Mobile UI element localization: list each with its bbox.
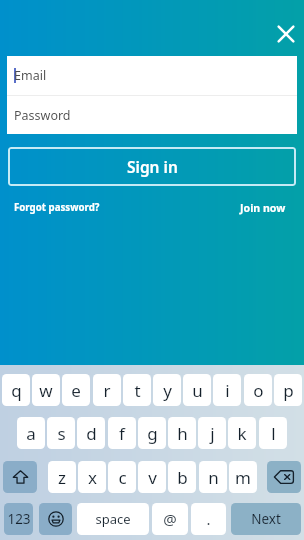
button[interactable]: f — [108, 417, 136, 449]
button[interactable]: q — [2, 374, 30, 406]
button[interactable]: w — [32, 374, 60, 406]
button[interactable]: Sign in — [8, 147, 296, 186]
button[interactable]: c — [108, 461, 136, 493]
staticText: n — [208, 466, 219, 489]
staticText: Forgot password? — [14, 201, 100, 214]
staticText: q — [11, 379, 22, 402]
button[interactable]: Forgot password? — [14, 201, 100, 214]
staticText: y — [163, 379, 172, 402]
staticText: v — [148, 466, 157, 489]
staticText: Join now — [240, 201, 286, 215]
button[interactable]: j — [198, 417, 226, 449]
staticText: o — [253, 379, 264, 402]
button[interactable]: m — [229, 461, 257, 493]
button[interactable]: i — [213, 374, 241, 406]
button[interactable]: Backspace — [267, 461, 301, 493]
staticText: space — [95, 510, 131, 528]
button[interactable]: z — [48, 461, 76, 493]
staticText: Email — [14, 67, 47, 84]
button[interactable]: l — [259, 417, 287, 449]
button[interactable]: n — [199, 461, 227, 493]
staticText: j — [210, 422, 215, 445]
staticText: t — [134, 379, 141, 402]
staticText: g — [147, 422, 158, 445]
button[interactable]: . — [191, 503, 226, 535]
staticText: d — [86, 422, 97, 445]
button[interactable]: Close — [270, 18, 302, 50]
button[interactable]: d — [77, 417, 105, 449]
staticText: h — [177, 422, 188, 445]
staticText: 123 — [7, 510, 31, 528]
button[interactable]: Next — [231, 503, 301, 535]
button[interactable]: 123 — [4, 503, 33, 535]
staticText: x — [88, 466, 97, 489]
button[interactable]: e — [62, 374, 90, 406]
button[interactable]: space — [77, 503, 149, 535]
staticText: p — [283, 379, 294, 402]
staticText: i — [225, 379, 230, 402]
button[interactable]: x — [78, 461, 106, 493]
staticText: z — [58, 466, 66, 489]
staticText: . — [206, 509, 211, 529]
staticText: f — [119, 422, 125, 445]
button[interactable]: k — [228, 417, 256, 449]
button[interactable]: p — [274, 374, 302, 406]
button[interactable]: s — [47, 417, 75, 449]
button[interactable]: o — [244, 374, 272, 406]
button[interactable]: @ — [152, 503, 188, 535]
staticText: @ — [163, 509, 177, 529]
button[interactable]: u — [183, 374, 211, 406]
button[interactable]: Email — [7, 56, 297, 95]
button[interactable]: Emoji — [39, 503, 72, 535]
staticText: m — [235, 466, 251, 489]
button[interactable]: v — [138, 461, 166, 493]
button[interactable]: h — [168, 417, 196, 449]
button[interactable]: Shift — [3, 461, 37, 493]
button[interactable]: a — [17, 417, 45, 449]
staticText: r — [103, 379, 111, 402]
button[interactable]: Join now — [240, 201, 286, 215]
button[interactable]: Password — [7, 96, 297, 134]
staticText: u — [192, 379, 203, 402]
staticText: a — [26, 422, 36, 445]
staticText: l — [271, 422, 276, 445]
staticText: w — [39, 379, 53, 402]
button[interactable]: t — [123, 374, 151, 406]
staticText: Sign in — [127, 156, 178, 177]
button[interactable]: g — [138, 417, 166, 449]
staticText: b — [177, 466, 188, 489]
staticText: Password — [14, 107, 71, 124]
button[interactable]: y — [153, 374, 181, 406]
button[interactable]: r — [93, 374, 121, 406]
staticText: k — [237, 422, 247, 445]
button[interactable]: b — [168, 461, 196, 493]
staticText: c — [118, 466, 127, 489]
staticText: e — [71, 379, 81, 402]
staticText: s — [57, 422, 66, 445]
staticText: Next — [251, 510, 281, 528]
